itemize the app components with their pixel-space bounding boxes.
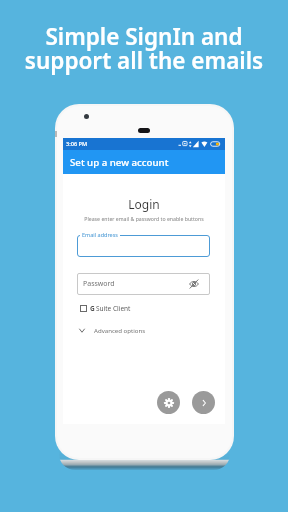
staticText: Email address — [82, 231, 118, 238]
button[interactable]: Set up a new account — [63, 150, 225, 174]
staticText: Login — [63, 196, 225, 212]
staticText: Set up a new account — [70, 156, 169, 169]
staticText: 3:06 PM — [66, 140, 88, 148]
button[interactable]: G — [80, 303, 131, 313]
button[interactable]: Password — [77, 273, 210, 295]
staticText: Simple SignIn and support all the emails — [0, 21, 288, 76]
staticText: G — [90, 304, 95, 313]
staticText: Suite Client — [96, 304, 131, 313]
staticText: Password — [83, 279, 115, 289]
staticText: Advanced options — [94, 326, 146, 334]
button[interactable]: Advanced options — [63, 324, 225, 336]
button[interactable] — [77, 235, 210, 257]
button[interactable]: Settings — [157, 391, 180, 414]
button[interactable]: Next — [192, 391, 215, 414]
other: Show password — [189, 279, 199, 289]
staticText: Please enter email & password to enable … — [63, 215, 225, 222]
